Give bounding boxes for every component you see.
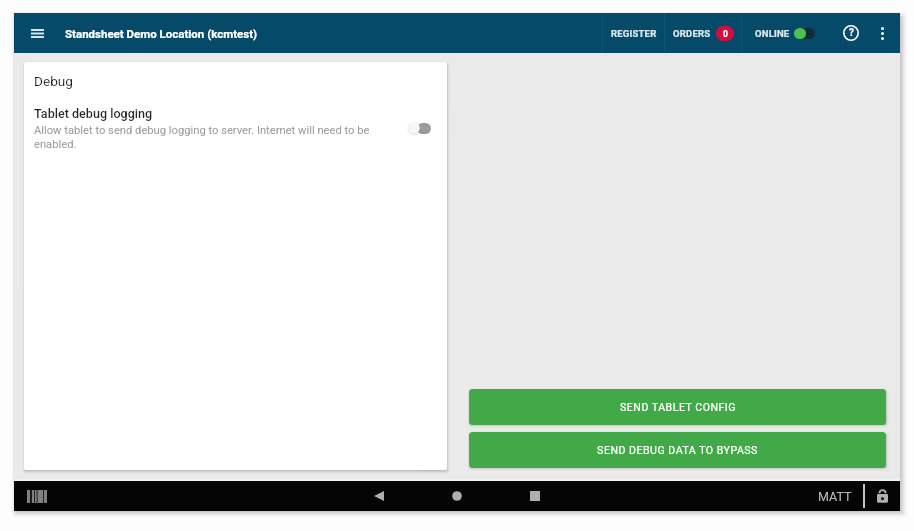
staticText: Allow tablet to send debug logging to se… xyxy=(34,124,396,150)
staticText: MATT xyxy=(818,489,852,504)
button[interactable]: Help xyxy=(836,18,866,48)
staticText: ONLINE xyxy=(755,28,790,39)
button[interactable]: SEND DEBUG DATA TO BYPASS xyxy=(469,432,886,468)
other: Barcode xyxy=(27,490,47,503)
button[interactable]: Recents xyxy=(496,481,574,511)
button[interactable]: SEND TABLET CONFIG xyxy=(469,389,886,425)
staticText: REGISTER xyxy=(611,28,657,39)
staticText: 0 xyxy=(723,29,728,39)
button[interactable]: ORDERS xyxy=(665,13,741,53)
button[interactable]: Back xyxy=(340,481,418,511)
button[interactable]: Lock xyxy=(865,481,900,511)
staticText: Standsheet Demo Location (kcmtest) xyxy=(65,27,258,40)
staticText: ? xyxy=(849,27,854,39)
staticText: Tablet debug logging xyxy=(34,106,153,121)
button[interactable]: More options xyxy=(871,19,893,47)
button[interactable]: Home xyxy=(418,481,496,511)
staticText: ORDERS xyxy=(673,28,711,39)
button[interactable]: REGISTER xyxy=(603,13,664,53)
button[interactable]: Tablet debug logging xyxy=(24,106,447,150)
staticText: SEND DEBUG DATA TO BYPASS xyxy=(597,444,758,456)
button[interactable]: Open navigation menu xyxy=(18,16,56,50)
button[interactable]: ONLINE xyxy=(742,13,827,53)
staticText: Debug xyxy=(34,73,73,89)
staticText: SEND TABLET CONFIG xyxy=(620,401,736,413)
